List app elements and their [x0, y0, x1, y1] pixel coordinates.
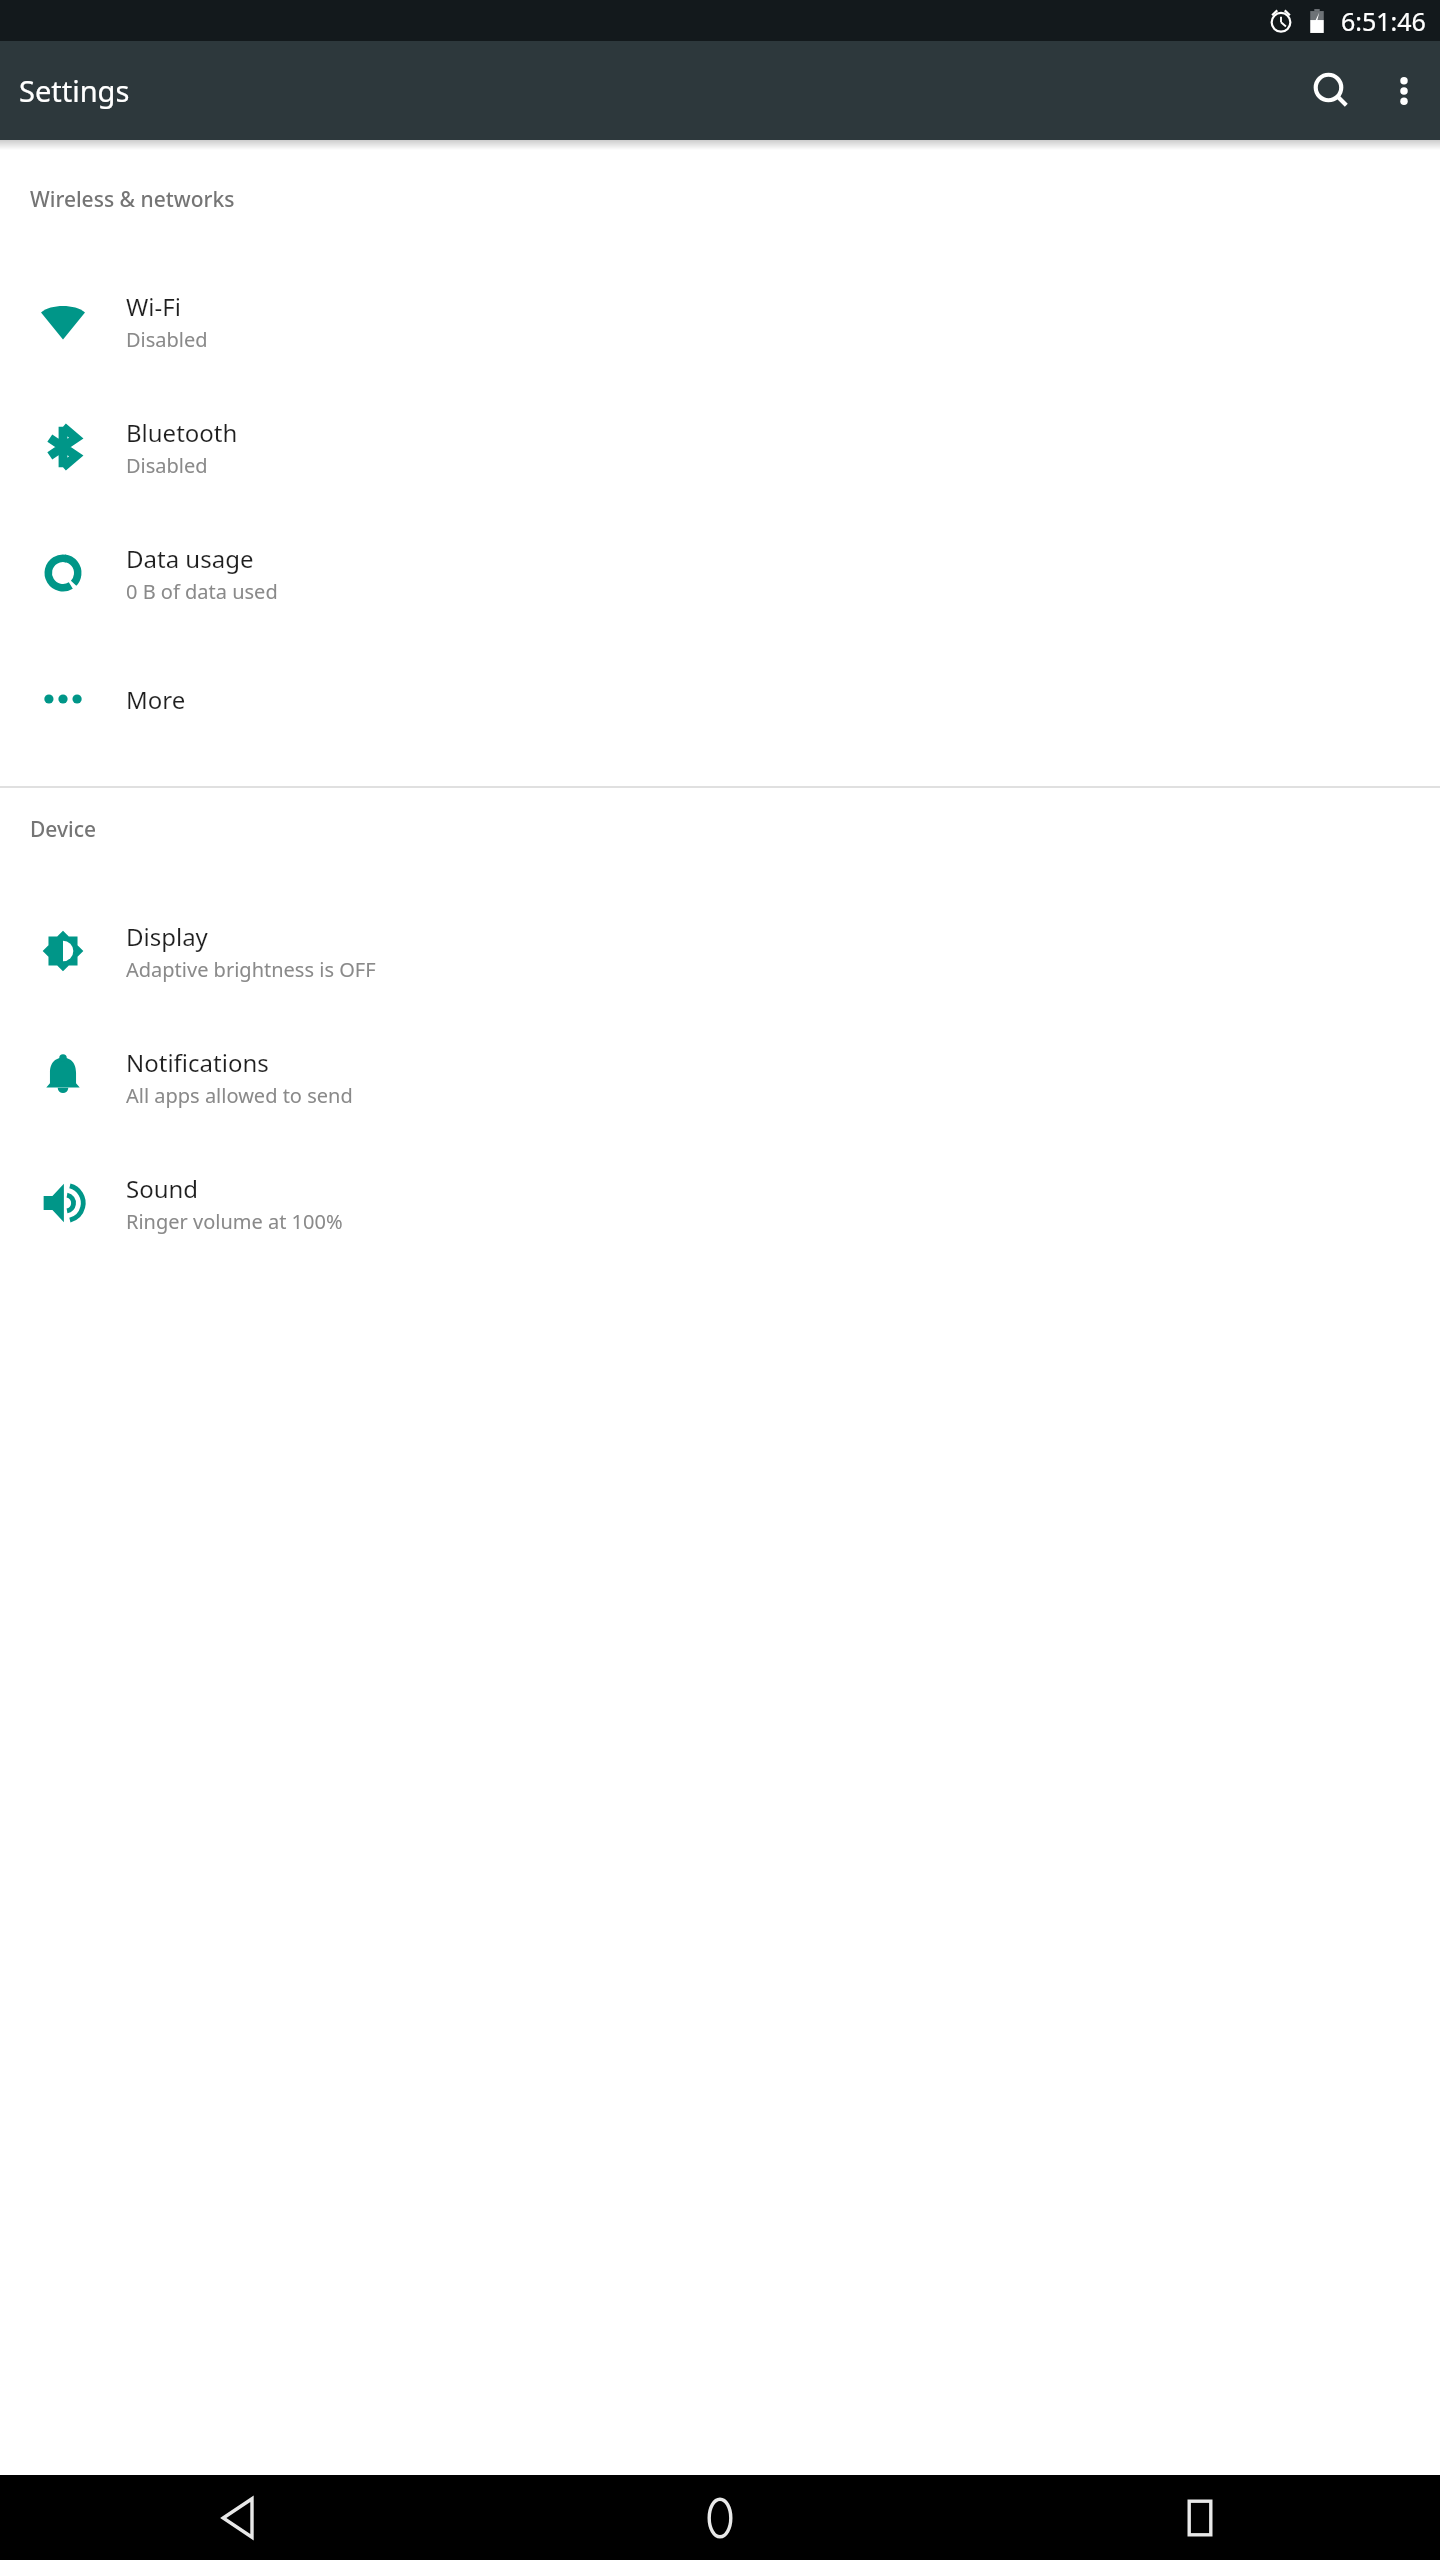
staticText: Display: [126, 920, 208, 953]
staticText: Notifications: [126, 1046, 269, 1079]
staticText: Wi-Fi: [126, 290, 181, 323]
button[interactable]: Data usage: [0, 510, 1440, 636]
staticText: Sound: [126, 1172, 199, 1205]
button[interactable]: Sound: [0, 1140, 1440, 1266]
staticText: Data usage: [126, 542, 254, 575]
staticText: Wireless & networks: [30, 185, 235, 214]
staticText: Adaptive brightness is OFF: [126, 956, 376, 983]
button[interactable]: Notifications: [0, 1014, 1440, 1140]
button[interactable]: More options: [1368, 55, 1440, 127]
button[interactable]: Display: [0, 888, 1440, 1014]
staticText: Ringer volume at 100%: [126, 1208, 343, 1235]
staticText: Disabled: [126, 326, 208, 353]
button[interactable]: Home: [480, 2475, 960, 2560]
button[interactable]: Search: [1296, 55, 1368, 127]
staticText: Settings: [19, 71, 130, 110]
staticText: 0 B of data used: [126, 578, 278, 605]
staticText: Device: [30, 815, 97, 844]
staticText: Bluetooth: [126, 416, 238, 449]
button[interactable]: More: [0, 636, 1440, 762]
button[interactable]: Bluetooth: [0, 384, 1440, 510]
staticText: All apps allowed to send: [126, 1082, 353, 1109]
button[interactable]: Wi-Fi: [0, 258, 1440, 384]
staticText: More: [126, 683, 186, 716]
staticText: Disabled: [126, 452, 208, 479]
staticText: 6:51:46: [1341, 4, 1426, 38]
button[interactable]: Recent apps: [960, 2475, 1440, 2560]
button[interactable]: Back: [0, 2475, 480, 2560]
